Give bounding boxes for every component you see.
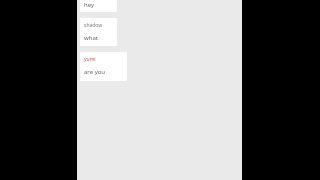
staticText: what zombii — [84, 34, 113, 42]
staticText: yumi — [84, 56, 96, 63]
button[interactable]: shadow — [80, 18, 117, 46]
other: Conversation — [77, 0, 242, 180]
staticText: shadow — [84, 22, 103, 29]
button[interactable]: hey shadow — [80, 0, 117, 12]
staticText: hey shadow — [84, 1, 117, 9]
staticText: are you coming — [84, 68, 123, 76]
button[interactable]: yumi — [80, 52, 127, 81]
